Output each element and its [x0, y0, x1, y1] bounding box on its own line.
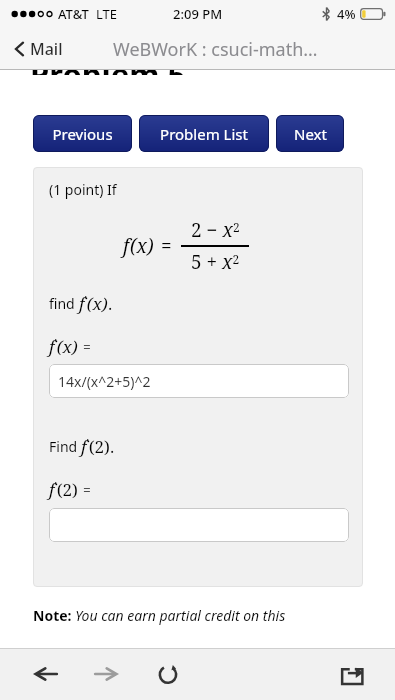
staticText: =: [161, 233, 172, 259]
button[interactable]: Mail: [10, 33, 67, 65]
button[interactable]: Next: [276, 115, 344, 152]
button[interactable]: Previous: [33, 115, 132, 152]
button[interactable]: 14x/(x^2+5)^2: [49, 364, 349, 398]
staticText: Note: You can earn partial credit on thi…: [33, 606, 286, 625]
staticText: Find: [49, 437, 81, 456]
staticText: find: [49, 294, 79, 313]
staticText: Mail: [30, 38, 63, 60]
staticText: f′(x): [49, 335, 78, 358]
staticText: 4%: [337, 5, 356, 23]
button[interactable]: Share: [331, 653, 373, 695]
staticText: 2:09 PM: [173, 5, 223, 23]
button[interactable]: Reload: [147, 653, 189, 695]
staticText: Problem 5: [30, 70, 186, 75]
staticText: f′(x): [79, 292, 108, 315]
staticText: 14x/(x^2+5)^2: [58, 372, 151, 391]
staticText: f′(2): [49, 478, 78, 501]
staticText: LTE: [96, 5, 118, 23]
staticText: (x): [130, 233, 154, 259]
staticText: f: [123, 233, 130, 259]
staticText: (1 point) If: [49, 180, 117, 199]
staticText: =: [83, 480, 91, 499]
staticText: Next: [294, 124, 327, 144]
staticText: Problem List: [160, 124, 248, 144]
staticText: 5 + x2: [191, 249, 240, 275]
staticText: Previous: [52, 124, 113, 144]
button[interactable]: Problem List: [139, 115, 269, 152]
staticText: =: [83, 337, 91, 356]
staticText: .: [108, 293, 113, 315]
staticText: f′(2): [81, 435, 110, 458]
staticText: 2 − x2: [191, 217, 240, 243]
staticText: .: [110, 436, 115, 458]
staticText: WeBWorK : csuci-math…: [113, 37, 318, 62]
button[interactable]: Forward: [85, 653, 127, 695]
button[interactable]: [49, 508, 349, 542]
staticText: AT&T: [58, 5, 89, 23]
button[interactable]: Back: [25, 653, 67, 695]
